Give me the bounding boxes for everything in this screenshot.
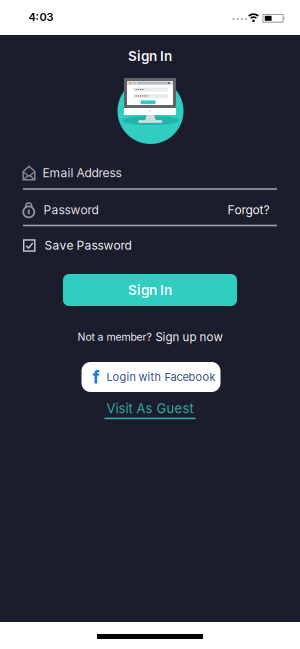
- staticText: Sign In: [128, 282, 172, 298]
- staticText: 4:03: [28, 10, 53, 23]
- staticText: Password: [43, 203, 98, 217]
- staticText: Sign up now: [155, 330, 222, 344]
- staticText: Save Password: [44, 238, 131, 253]
- button[interactable]: Not a member?: [77, 330, 222, 344]
- button[interactable]: Email Address: [0, 160, 300, 186]
- button[interactable]: Forgot?: [223, 199, 273, 221]
- button[interactable]: Visit As Guest: [104, 401, 195, 419]
- staticText: f: [92, 366, 99, 388]
- button[interactable]: f: [81, 362, 220, 392]
- staticText: Email Address: [42, 166, 121, 180]
- button[interactable]: Save Password: [0, 234, 300, 256]
- button[interactable]: Sign In: [63, 274, 237, 306]
- staticText: Visit As Guest: [106, 401, 193, 416]
- staticText: Not a member?: [77, 331, 151, 343]
- staticText: Login with Facebook: [106, 370, 215, 383]
- staticText: Forgot?: [227, 203, 269, 217]
- button[interactable]: Password: [0, 197, 240, 223]
- staticText: Sign In: [128, 48, 172, 64]
